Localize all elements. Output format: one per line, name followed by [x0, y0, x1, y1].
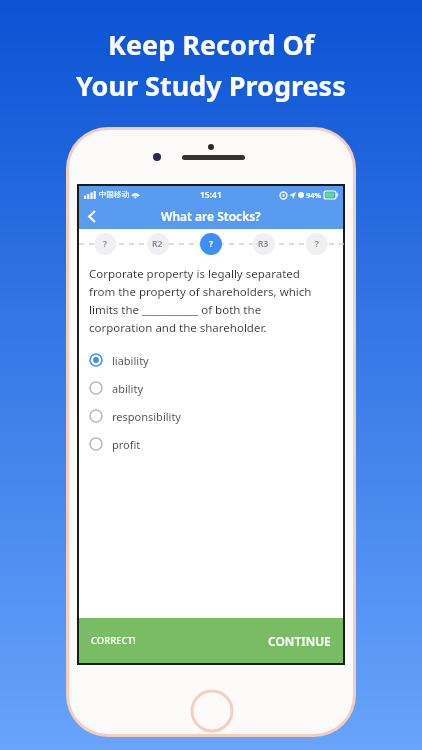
button[interactable]: ?	[184, 229, 237, 259]
staticText: Your Study Progress	[76, 67, 346, 104]
button[interactable]: R2	[131, 229, 184, 259]
staticText: What are Stocks?	[161, 208, 261, 224]
staticText: ?	[103, 238, 107, 250]
staticText: ?	[315, 238, 319, 250]
staticText: R2	[152, 238, 163, 250]
staticText: Corporate property is legally separated	[89, 266, 300, 282]
staticText: Keep Record Of	[108, 26, 315, 63]
button[interactable]: Back	[79, 203, 105, 229]
button[interactable]: CORRECT!	[79, 618, 343, 663]
staticText: R3	[258, 238, 269, 250]
button[interactable]: responsibility	[89, 402, 333, 430]
staticText: responsibility	[112, 409, 181, 424]
staticText: corporation and the shareholder.	[89, 320, 267, 336]
button[interactable]: ?	[79, 229, 131, 259]
staticText: 15:41	[200, 189, 222, 201]
staticText: profit	[112, 437, 141, 452]
button[interactable]: Home	[190, 689, 234, 733]
button[interactable]: R3	[237, 229, 290, 259]
button[interactable]: ability	[89, 374, 333, 402]
staticText: ability	[112, 381, 144, 396]
button[interactable]: profit	[89, 430, 333, 458]
staticText: 94%	[306, 190, 322, 200]
staticText: 中国移动	[99, 190, 129, 199]
staticText: liability	[112, 353, 149, 368]
staticText: limits the ___________ of both the	[89, 302, 262, 318]
button[interactable]: ?	[290, 229, 343, 259]
staticText: CONTINUE	[268, 633, 331, 649]
staticText: ?	[209, 238, 213, 250]
button[interactable]: liability	[89, 346, 333, 374]
staticText: from the property of shareholders, which	[89, 284, 312, 300]
staticText: CORRECT!	[91, 634, 136, 647]
